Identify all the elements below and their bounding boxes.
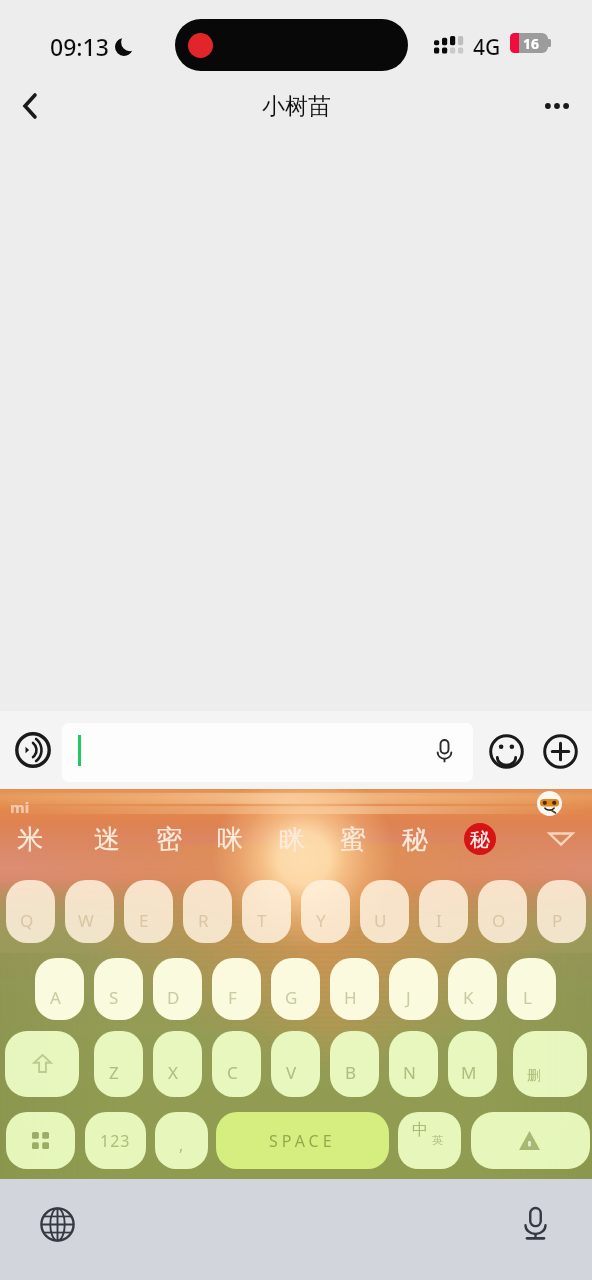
staticText: P	[552, 909, 563, 932]
button[interactable]: Enter	[471, 1112, 590, 1169]
button[interactable]: 眯	[269, 821, 315, 857]
button[interactable]: 咪	[207, 821, 253, 857]
button[interactable]: W	[65, 880, 114, 943]
button[interactable]: Switch Chinese English	[398, 1112, 461, 1169]
staticText: 密	[156, 823, 182, 856]
button[interactable]: More actions	[540, 731, 580, 771]
staticText: H	[344, 986, 357, 1009]
button[interactable]: S	[94, 958, 143, 1020]
button[interactable]: Q	[6, 880, 55, 943]
staticText: A	[50, 986, 61, 1009]
staticText: 咪	[217, 823, 243, 856]
staticText: 秘	[470, 827, 490, 852]
staticText: M	[461, 1061, 477, 1084]
button[interactable]: 123	[85, 1112, 146, 1169]
button[interactable]: Y	[301, 880, 350, 943]
button[interactable]: 米	[7, 821, 53, 857]
staticText: O	[492, 909, 506, 932]
staticText: 09:13	[50, 31, 109, 62]
staticText: S	[109, 986, 119, 1009]
staticText: Z	[109, 1061, 119, 1084]
button[interactable]: Back	[0, 78, 58, 134]
button[interactable]: A	[35, 958, 84, 1020]
staticText: U	[374, 909, 387, 932]
button[interactable]: B	[330, 1031, 379, 1097]
button[interactable]: I	[419, 880, 468, 943]
staticText: V	[286, 1061, 297, 1084]
button[interactable]: ,	[155, 1112, 208, 1169]
button[interactable]: X	[153, 1031, 202, 1097]
button[interactable]: L	[507, 958, 556, 1020]
button[interactable]: Hide keyboard	[535, 821, 587, 857]
button[interactable]	[62, 723, 473, 782]
button[interactable]: O	[478, 880, 527, 943]
button[interactable]: 迷	[84, 821, 130, 857]
button[interactable]: 蜜	[330, 821, 376, 857]
staticText: 蜜	[340, 823, 366, 856]
staticText: B	[345, 1061, 357, 1084]
staticText: 迷	[94, 823, 120, 856]
button[interactable]: Sticker store	[537, 791, 562, 816]
button[interactable]: More options	[528, 78, 592, 134]
staticText: X	[168, 1061, 178, 1084]
button[interactable]: D	[153, 958, 202, 1020]
button[interactable]: C	[212, 1031, 261, 1097]
staticText: SPACE	[269, 1130, 336, 1152]
button[interactable]: T	[242, 880, 291, 943]
button[interactable]: Switch input language	[31, 1198, 83, 1250]
staticText: N	[403, 1061, 416, 1084]
button[interactable]: K	[448, 958, 497, 1020]
button[interactable]: H	[330, 958, 379, 1020]
staticText: 英	[432, 1133, 443, 1147]
button[interactable]: 秘	[464, 823, 496, 855]
button[interactable]: Delete	[513, 1031, 587, 1097]
staticText: 4G	[473, 33, 501, 62]
button[interactable]: SPACE	[216, 1112, 389, 1169]
button[interactable]: 密	[146, 821, 192, 857]
staticText: D	[167, 986, 180, 1009]
staticText: G	[285, 986, 298, 1009]
staticText: 秘	[402, 823, 428, 856]
staticText: 16	[523, 34, 540, 53]
button[interactable]: N	[389, 1031, 438, 1097]
staticText: ,	[179, 1134, 184, 1156]
button[interactable]: Voice input	[509, 1197, 561, 1249]
button[interactable]: P	[537, 880, 586, 943]
staticText: 123	[100, 1130, 131, 1152]
button[interactable]: E	[124, 880, 173, 943]
staticText: 眯	[279, 823, 305, 856]
staticText: R	[198, 909, 209, 932]
button[interactable]: Voice input	[14, 731, 52, 769]
staticText: I	[436, 909, 442, 932]
staticText: 米	[17, 823, 43, 856]
staticText: C	[227, 1061, 238, 1084]
staticText: 删	[527, 1067, 541, 1085]
button[interactable]: F	[212, 958, 261, 1020]
button[interactable]: 秘	[392, 821, 438, 857]
staticText: 中	[412, 1120, 428, 1140]
staticText: F	[228, 986, 237, 1009]
button[interactable]: Keyboard layouts	[6, 1112, 75, 1169]
button[interactable]: J	[389, 958, 438, 1020]
staticText: Q	[20, 909, 34, 932]
button[interactable]: V	[271, 1031, 320, 1097]
staticText: E	[139, 909, 149, 932]
staticText: 小树苗	[262, 92, 331, 121]
staticText: K	[463, 986, 474, 1009]
staticText: mi	[10, 797, 30, 817]
staticText: L	[523, 986, 532, 1009]
button[interactable]: G	[271, 958, 320, 1020]
staticText: Y	[316, 909, 326, 932]
button[interactable]: R	[183, 880, 232, 943]
staticText: J	[406, 986, 411, 1009]
staticText: W	[78, 909, 94, 932]
button[interactable]: Shift	[5, 1031, 79, 1097]
staticText: T	[257, 909, 267, 932]
button[interactable]: M	[448, 1031, 497, 1097]
button[interactable]: Z	[94, 1031, 143, 1097]
button[interactable]: U	[360, 880, 409, 943]
button[interactable]: Emoji	[486, 731, 526, 771]
